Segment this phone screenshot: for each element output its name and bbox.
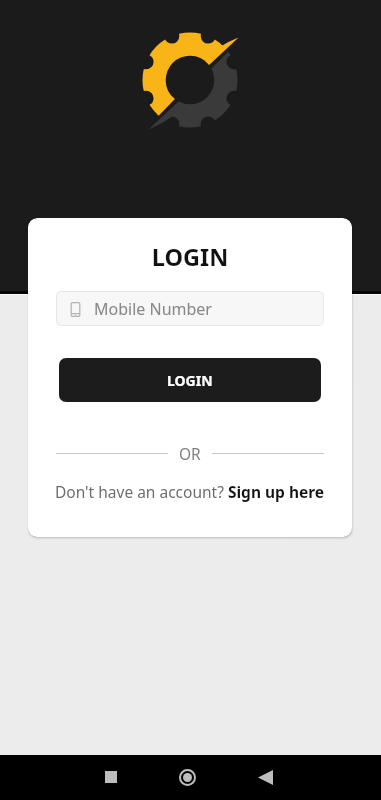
staticText: LOGIN [28,241,352,273]
button[interactable]: Home [179,769,196,786]
staticText: Mobile Number [94,298,212,320]
staticText: OR [179,443,201,464]
button[interactable]: Don't have an account? Sign up here [28,481,352,502]
button[interactable]: Back [258,770,273,785]
staticText: LOGIN [167,371,213,390]
staticText: Don't have an account? Sign up here [55,481,325,502]
button[interactable]: LOGIN [59,358,321,402]
button[interactable]: Mobile Number [56,291,324,326]
